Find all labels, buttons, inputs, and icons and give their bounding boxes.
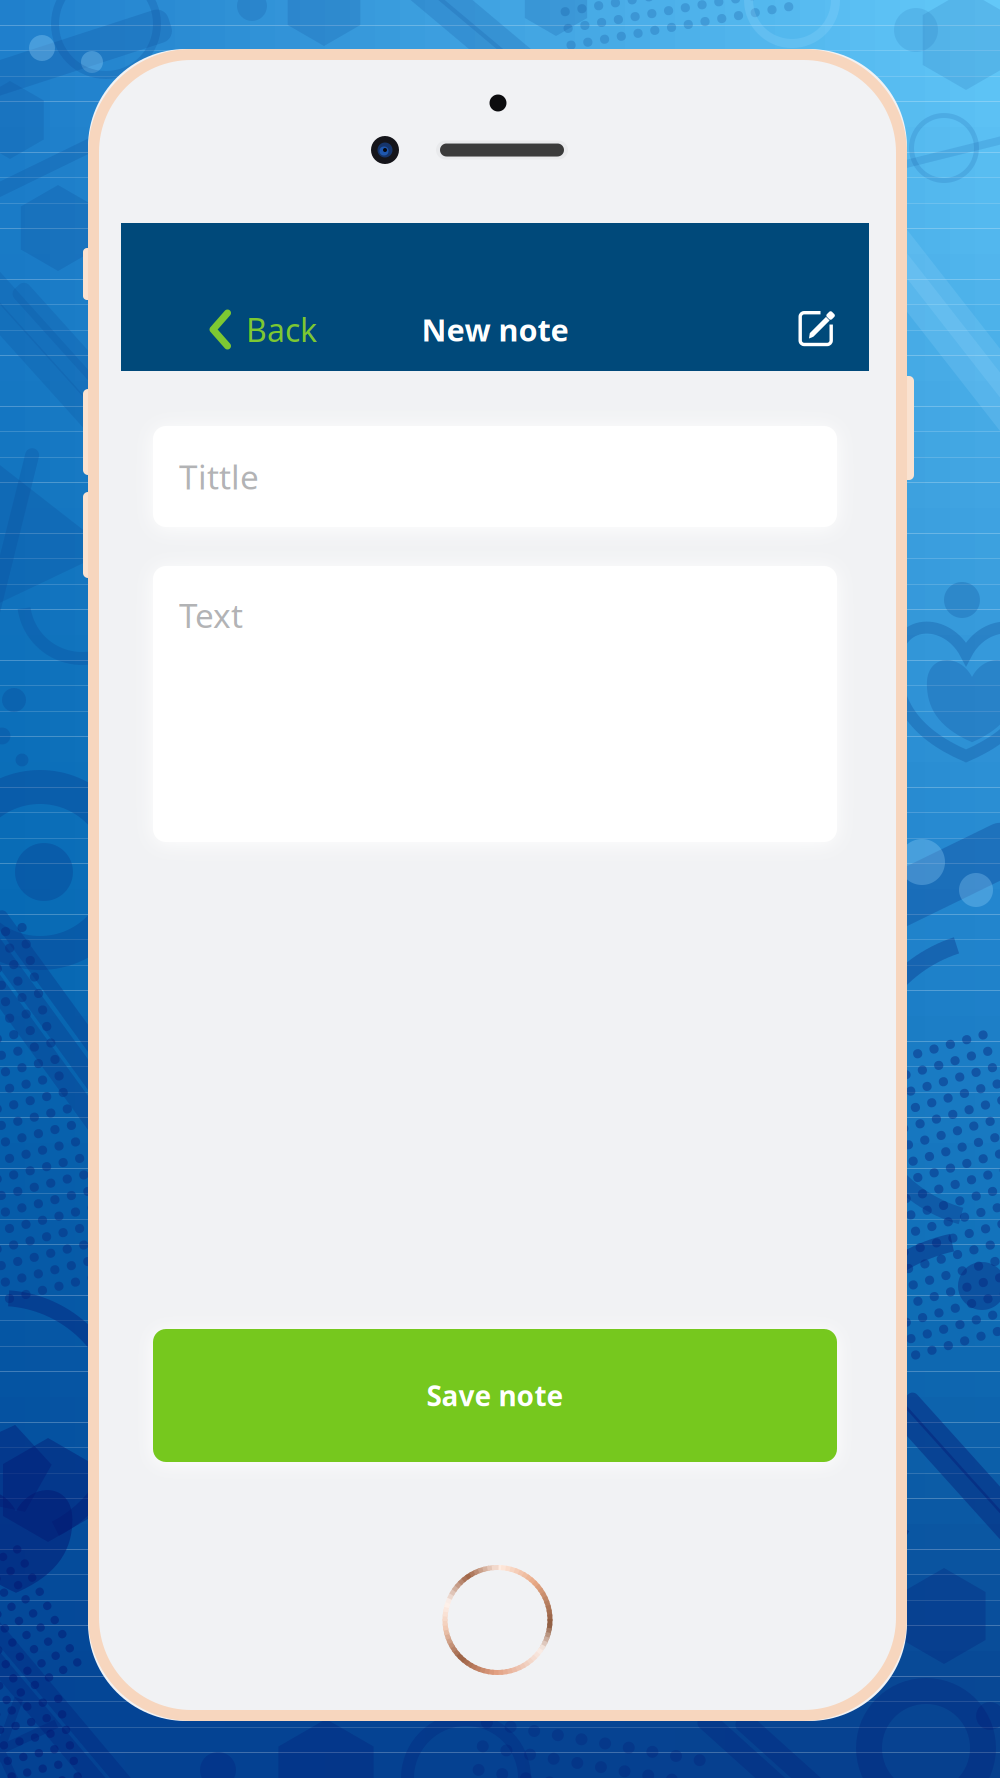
- button[interactable]: Save note: [153, 1329, 837, 1462]
- button[interactable]: Text: [153, 566, 837, 842]
- staticText: Text: [179, 593, 243, 637]
- staticText: Tittle: [179, 454, 259, 499]
- button[interactable]: Home: [442, 1565, 552, 1675]
- staticText: Back: [246, 308, 317, 351]
- button[interactable]: Compose note: [768, 288, 869, 371]
- button[interactable]: Title: [153, 426, 837, 527]
- button[interactable]: Back: [121, 288, 343, 371]
- staticText: New note: [421, 309, 568, 350]
- staticText: Save note: [426, 1377, 563, 1414]
